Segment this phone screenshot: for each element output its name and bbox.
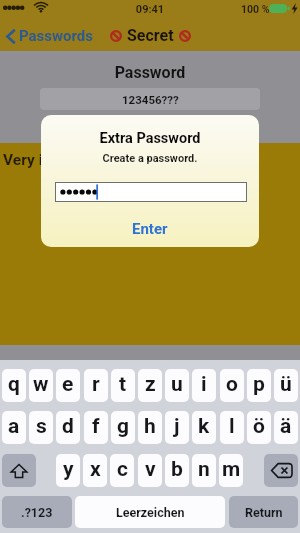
button[interactable]: g [111, 411, 135, 444]
staticText: w [33, 372, 49, 397]
staticText: y [63, 457, 74, 482]
staticText: o [226, 372, 238, 397]
staticText: Create a password. [41, 152, 259, 165]
button[interactable]: r [84, 369, 108, 402]
staticText: z [145, 372, 156, 397]
staticText: p [253, 372, 265, 397]
button[interactable]: d [56, 411, 80, 444]
button[interactable]: Shift [2, 454, 36, 487]
staticText: .?123 [21, 505, 53, 520]
button[interactable]: Passwords [6, 27, 94, 45]
button[interactable]: v [138, 454, 162, 487]
button[interactable]: j [165, 411, 189, 444]
staticText: ü [280, 372, 292, 397]
staticText: v [145, 457, 156, 482]
button[interactable]: ö [247, 411, 271, 444]
button[interactable]: Enter [41, 216, 259, 241]
staticText: l [229, 414, 235, 439]
staticText: n [198, 457, 210, 482]
button[interactable]: z [138, 369, 162, 402]
button[interactable]: Numbers [2, 496, 72, 528]
staticText: 09:41 [0, 3, 300, 16]
staticText: s [36, 414, 47, 439]
staticText: ä [280, 414, 292, 439]
button[interactable]: k [192, 411, 216, 444]
staticText: a [8, 414, 20, 439]
staticText: g [117, 414, 129, 439]
button[interactable]: ä [274, 411, 298, 444]
button[interactable]: ü [274, 369, 298, 402]
staticText: f [92, 414, 100, 439]
staticText: c [117, 457, 128, 482]
button[interactable]: b [165, 454, 189, 487]
button[interactable]: u [165, 369, 189, 402]
button[interactable]: l [220, 411, 244, 444]
button[interactable]: 123456??? [40, 88, 260, 110]
button[interactable]: m [219, 454, 243, 487]
staticText: q [8, 372, 20, 397]
staticText: k [198, 414, 210, 439]
staticText: i [201, 372, 207, 397]
staticText: ö [253, 414, 265, 439]
staticText: t [119, 372, 127, 397]
button[interactable]: f [84, 411, 108, 444]
staticText: Password [0, 63, 300, 82]
staticText: 123456??? [122, 93, 179, 106]
button[interactable]: c [110, 454, 134, 487]
staticText: d [62, 414, 74, 439]
button[interactable]: t [111, 369, 135, 402]
staticText: Secret [127, 26, 174, 45]
button[interactable]: Leerzeichen [75, 496, 225, 528]
button[interactable]: o [220, 369, 244, 402]
staticText: Passwords [19, 27, 94, 45]
staticText: Leerzeichen [116, 505, 185, 520]
staticText: m [222, 457, 241, 482]
button[interactable]: n [192, 454, 216, 487]
button[interactable]: s [29, 411, 53, 444]
staticText: u [171, 372, 183, 397]
button[interactable]: p [247, 369, 271, 402]
staticText: 100 % [241, 3, 270, 15]
button[interactable] [55, 182, 247, 202]
staticText: r [92, 372, 100, 397]
button[interactable]: w [29, 369, 53, 402]
staticText: Enter [132, 220, 168, 238]
button[interactable]: h [138, 411, 162, 444]
button[interactable]: e [56, 369, 80, 402]
button[interactable]: y [56, 454, 80, 487]
staticText: e [62, 372, 74, 397]
button[interactable]: a [2, 411, 26, 444]
staticText: x [90, 457, 101, 482]
button[interactable]: i [192, 369, 216, 402]
button[interactable]: x [83, 454, 107, 487]
staticText: h [144, 414, 156, 439]
staticText: j [174, 414, 180, 439]
button[interactable]: Return [229, 496, 298, 528]
button[interactable]: Backspace [264, 454, 298, 487]
button[interactable]: q [2, 369, 26, 402]
staticText: Very i [3, 151, 43, 169]
staticText: Extra Password [41, 130, 259, 147]
staticText: b [171, 457, 183, 482]
staticText: Return [245, 505, 283, 520]
